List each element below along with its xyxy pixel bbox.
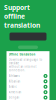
button[interactable]: Arabic bbox=[6, 84, 49, 89]
staticText: Afrikaans bbox=[8, 74, 19, 78]
button[interactable]: Afrikaans bbox=[6, 73, 49, 79]
staticText: Offline translation bbox=[8, 53, 35, 56]
staticText: Arabic bbox=[8, 85, 16, 88]
staticText: Support offline bbox=[4, 3, 30, 21]
button[interactable]: Get started bbox=[18, 46, 38, 49]
button[interactable]: Armenian bbox=[6, 89, 49, 95]
staticText: without an internet connection. bbox=[8, 65, 36, 72]
button[interactable]: Bengali bbox=[6, 95, 49, 100]
button[interactable]: Albanian bbox=[6, 79, 49, 84]
staticText: Armenian bbox=[8, 90, 21, 94]
staticText: translation bbox=[4, 21, 40, 30]
staticText: Download a language to translate bbox=[8, 58, 42, 65]
staticText: Bengali bbox=[8, 96, 19, 99]
staticText: Albanian bbox=[8, 80, 20, 83]
